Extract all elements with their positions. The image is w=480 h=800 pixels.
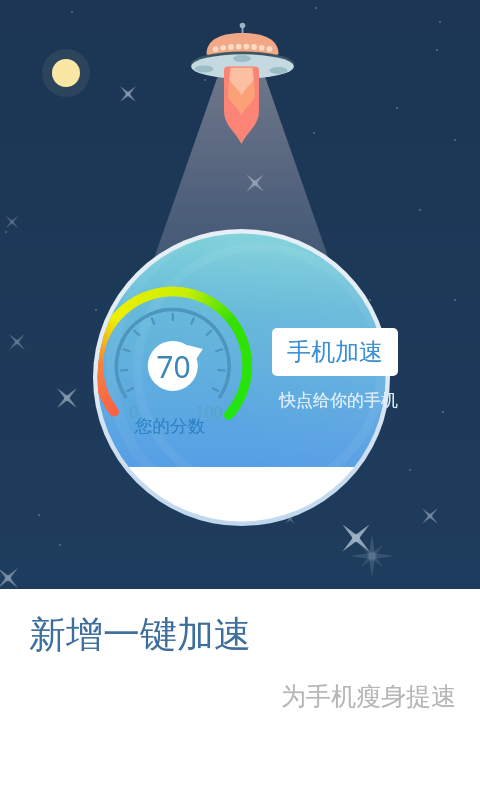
staticText: 新增一键加速	[29, 611, 251, 658]
staticText: 您的分数	[135, 415, 205, 437]
staticText: 0	[129, 401, 139, 423]
staticText: 70	[156, 346, 191, 387]
button[interactable]: 手机加速	[272, 328, 398, 376]
staticText: 为手机瘦身提速	[0, 681, 456, 712]
staticText: 手机加速	[287, 337, 383, 367]
staticText: 快点给你的手机	[279, 390, 398, 411]
staticText: 100	[195, 401, 223, 423]
